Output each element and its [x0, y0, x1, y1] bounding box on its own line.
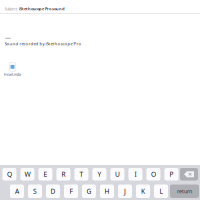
button[interactable]: T	[74, 168, 88, 180]
staticText: return	[177, 188, 192, 195]
button[interactable]: G	[82, 184, 96, 198]
button[interactable]: O	[146, 168, 160, 180]
button[interactable]: Q	[2, 168, 16, 180]
button[interactable]: S	[28, 184, 42, 198]
button[interactable]: A	[10, 184, 24, 198]
button[interactable]: J	[118, 184, 132, 198]
staticText: J	[124, 187, 126, 196]
staticText: Sound recorded by iStethoscope Pro	[4, 41, 81, 46]
staticText: I	[134, 170, 136, 179]
staticText: O	[151, 170, 156, 179]
button[interactable]: I	[128, 168, 142, 180]
staticText: T	[79, 170, 83, 179]
staticText: L	[159, 187, 162, 196]
button[interactable]: K	[136, 184, 150, 198]
button[interactable]: W	[20, 168, 34, 180]
staticText: R	[61, 170, 65, 179]
staticText: U	[115, 170, 120, 179]
staticText: A	[15, 187, 19, 196]
staticText: S	[33, 187, 37, 196]
staticText: D	[50, 187, 55, 196]
button[interactable]: Y	[92, 168, 106, 180]
button[interactable]: Heart.m4a	[0, 63, 21, 77]
button[interactable]: H	[100, 184, 114, 198]
button[interactable]: return	[170, 184, 199, 198]
staticText: H	[104, 187, 109, 196]
button[interactable]: D	[46, 184, 60, 198]
button[interactable]: E	[38, 168, 52, 180]
staticText: Subject:	[4, 6, 17, 11]
button[interactable]: Delete	[180, 168, 198, 180]
staticText: F	[69, 187, 72, 196]
staticText: E	[43, 170, 47, 179]
staticText: Y	[97, 170, 101, 179]
button[interactable]: U	[110, 168, 124, 180]
staticText: W	[24, 170, 30, 179]
staticText: Q	[7, 170, 12, 179]
button[interactable]: P	[164, 168, 178, 180]
staticText: K	[141, 187, 145, 196]
button[interactable]: L	[154, 184, 168, 198]
button[interactable]: Subject:	[0, 0, 200, 13]
button[interactable]: R	[56, 168, 70, 180]
staticText: Heart.m4a	[4, 72, 21, 77]
staticText: P	[169, 170, 173, 179]
button[interactable]: F	[64, 184, 78, 198]
staticText: iStethoscope Pro sound	[19, 6, 65, 11]
staticText: G	[86, 187, 91, 196]
